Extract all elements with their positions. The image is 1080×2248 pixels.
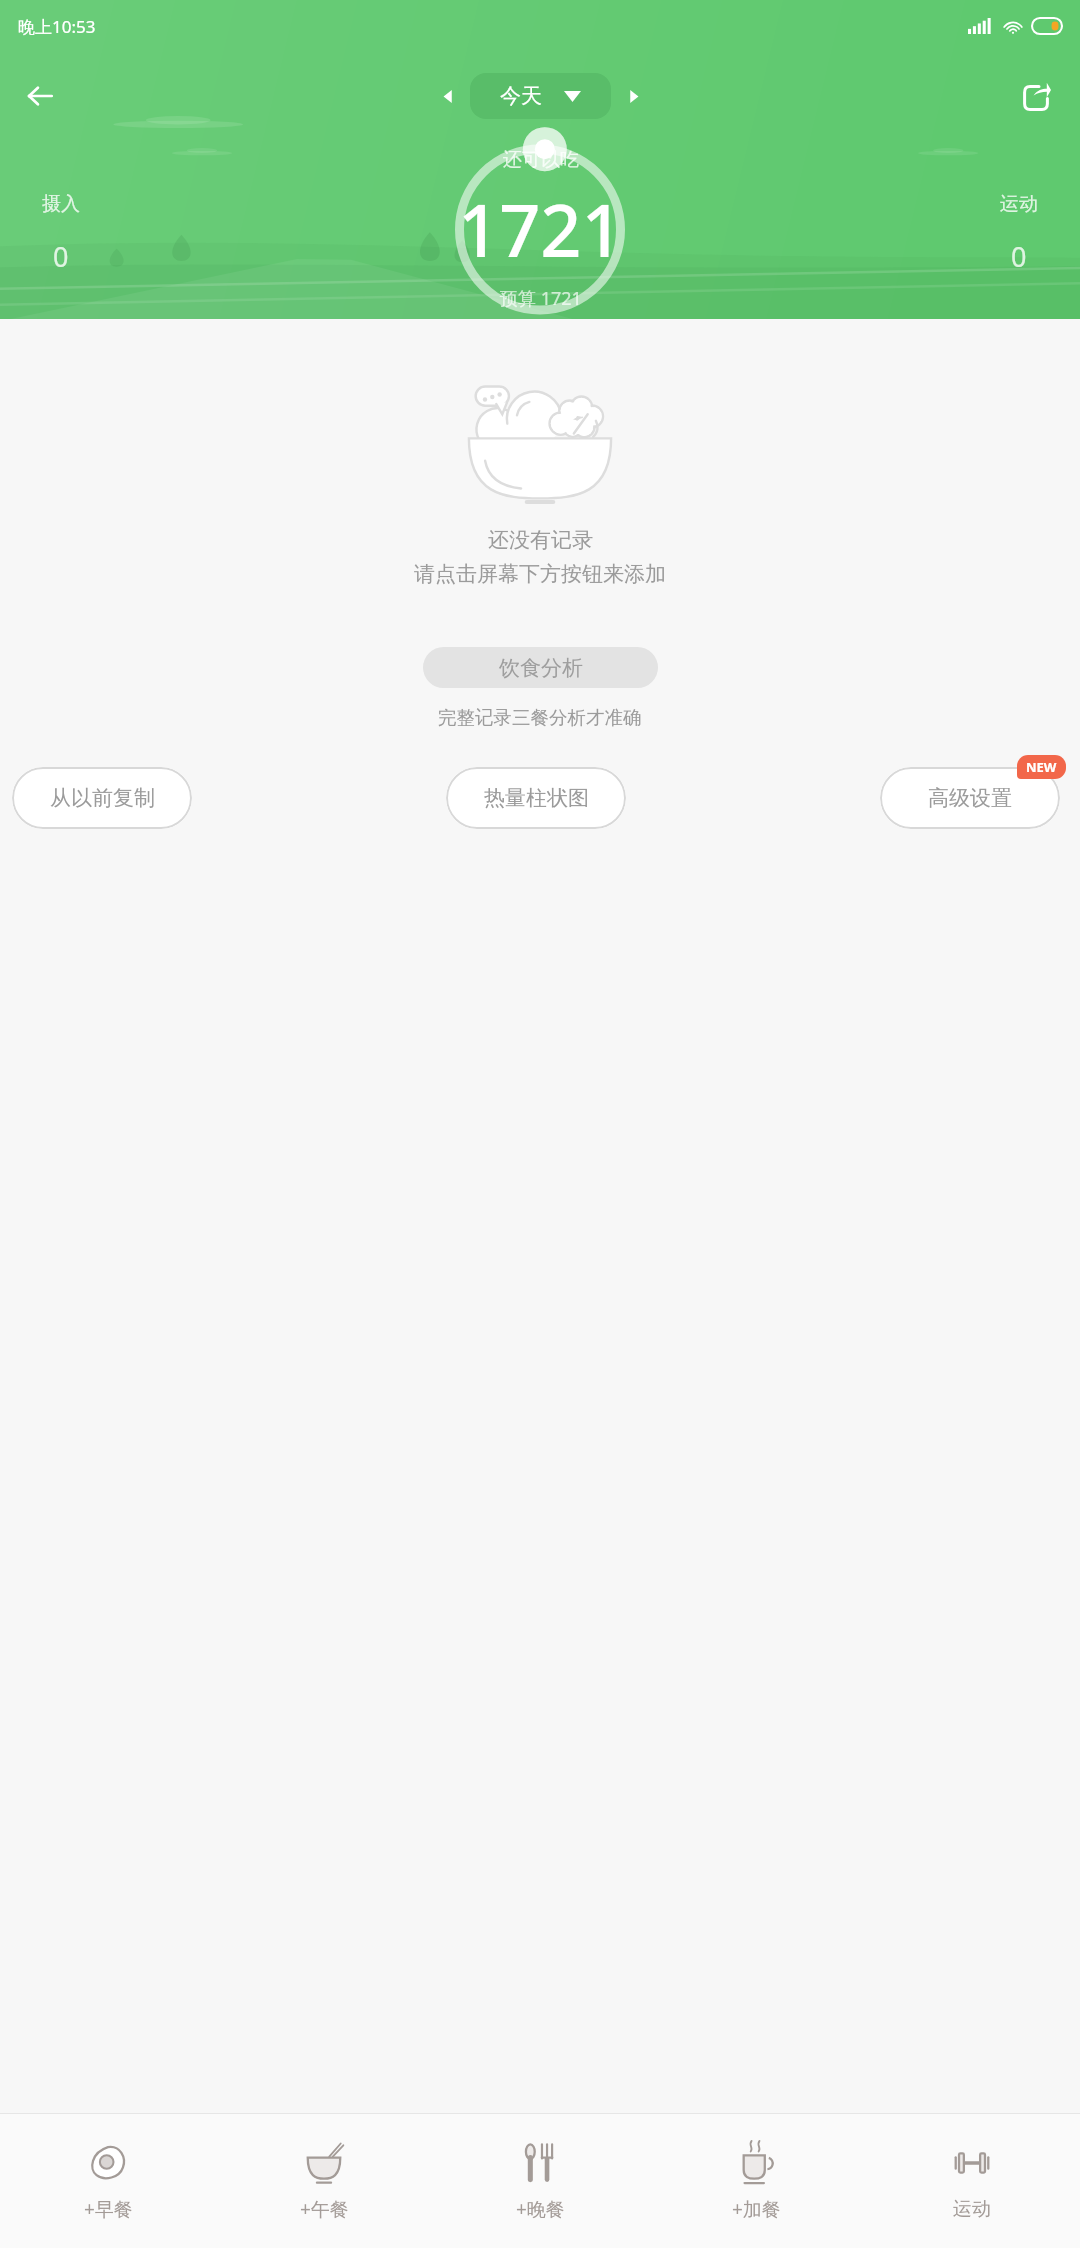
staticText: 今天 <box>500 83 542 109</box>
button[interactable]: +加餐 <box>648 2114 864 2248</box>
staticText: 0 <box>1011 238 1027 275</box>
staticText: 运动 <box>1000 192 1038 216</box>
button[interactable]: 从以前复制 <box>12 767 192 829</box>
staticText: 晚上10:53 <box>18 15 96 38</box>
staticText: +晚餐 <box>516 2196 565 2222</box>
staticText: 从以前复制 <box>50 785 155 811</box>
button[interactable]: 高级设置 <box>880 767 1060 829</box>
button[interactable]: Next day <box>611 74 655 118</box>
button[interactable]: +午餐 <box>216 2114 432 2248</box>
staticText: 1721 <box>458 180 623 278</box>
staticText: 摄入 <box>42 192 80 216</box>
button[interactable]: Share <box>1008 68 1064 124</box>
staticText: 还可以吃 <box>503 148 579 172</box>
staticText: 热量柱状图 <box>484 785 589 811</box>
button[interactable]: 热量柱状图 <box>446 767 626 829</box>
button[interactable]: +早餐 <box>0 2114 216 2248</box>
staticText: NEW <box>1026 758 1057 776</box>
button[interactable]: 今天 <box>470 73 611 119</box>
button[interactable]: 运动 <box>864 2114 1080 2248</box>
staticText: 完整记录三餐分析才准确 <box>438 706 642 729</box>
staticText: +早餐 <box>84 2196 133 2222</box>
button[interactable]: Previous day <box>426 74 470 118</box>
staticText: +午餐 <box>300 2196 349 2222</box>
staticText: 还没有记录 <box>488 527 593 553</box>
staticText: +加餐 <box>732 2196 781 2222</box>
staticText: 请点击屏幕下方按钮来添加 <box>414 561 666 587</box>
staticText: 高级设置 <box>928 785 1012 811</box>
button[interactable]: +晚餐 <box>432 2114 648 2248</box>
button[interactable]: Back <box>12 68 68 124</box>
staticText: 饮食分析 <box>499 655 583 681</box>
staticText: 运动 <box>953 2197 991 2221</box>
staticText: 0 <box>53 238 69 275</box>
button[interactable]: 饮食分析 <box>423 647 658 688</box>
staticText: 预算 1721 <box>500 286 582 311</box>
